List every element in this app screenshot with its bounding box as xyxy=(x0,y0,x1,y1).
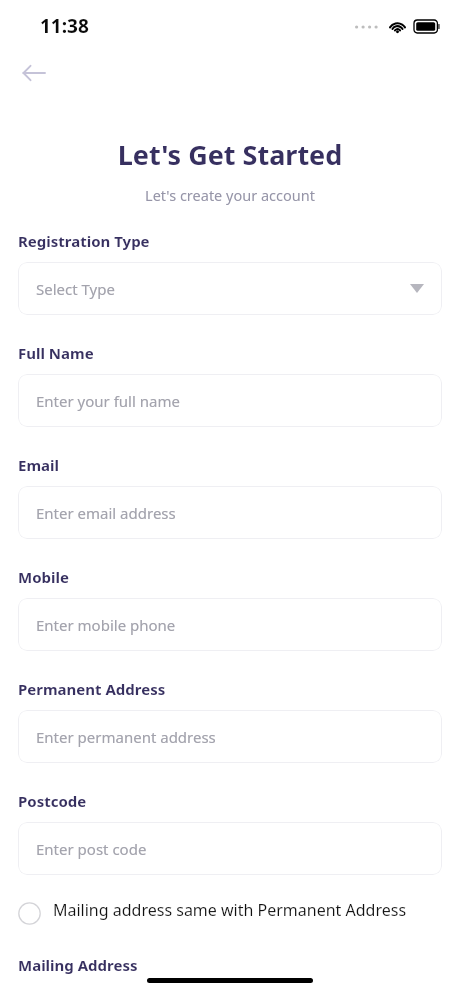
button[interactable]: Select Type xyxy=(18,262,442,315)
staticText: Mailing Address xyxy=(18,955,138,975)
staticText: Enter permanent address xyxy=(36,727,216,747)
staticText: 11:38 xyxy=(40,13,89,39)
staticText: Permanent Address xyxy=(18,679,166,699)
staticText: Enter your full name xyxy=(36,391,180,411)
staticText: Mobile xyxy=(18,567,69,587)
staticText: Enter email address xyxy=(36,503,176,523)
button[interactable]: Enter your full name xyxy=(18,374,442,427)
button[interactable]: Enter mobile phone xyxy=(18,598,442,651)
staticText: Enter post code xyxy=(36,839,147,859)
staticText: Let's Get Started xyxy=(0,136,460,173)
staticText: Registration Type xyxy=(18,231,150,251)
button[interactable]: Enter post code xyxy=(18,822,442,875)
staticText: Enter mobile phone xyxy=(36,615,176,635)
staticText: Mailing address same with Permanent Addr… xyxy=(53,899,407,921)
staticText: Let's create your account xyxy=(0,185,460,205)
button[interactable]: Back xyxy=(12,52,54,94)
staticText: Select Type xyxy=(36,279,115,299)
staticText: Full Name xyxy=(18,343,94,363)
staticText: Email xyxy=(18,455,59,475)
button[interactable]: Enter permanent address xyxy=(18,710,442,763)
staticText: Postcode xyxy=(18,791,87,811)
button[interactable]: Enter email address xyxy=(18,486,442,539)
button[interactable]: Mailing address same with Permanent Addr… xyxy=(18,899,442,925)
